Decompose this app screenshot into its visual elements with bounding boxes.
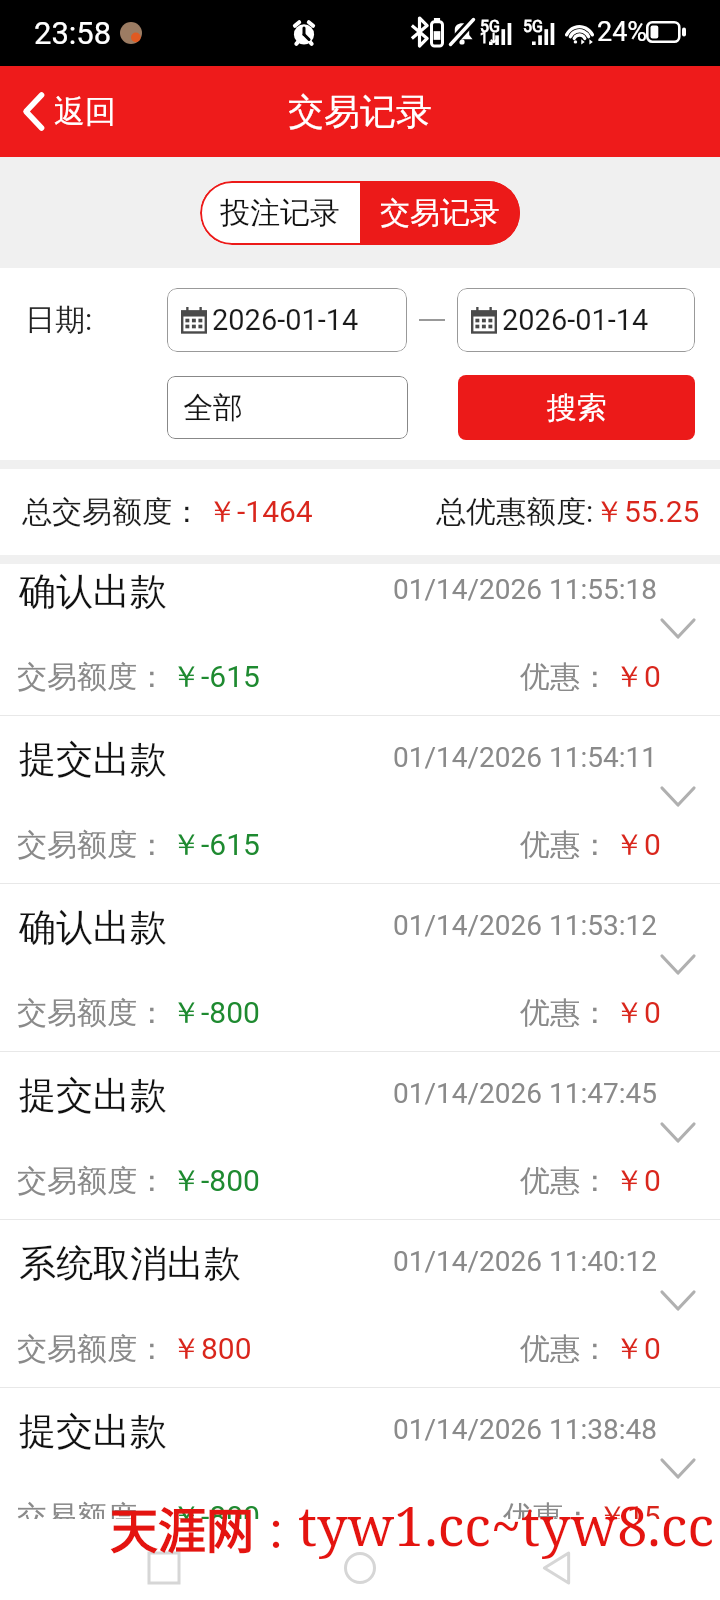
staticText: 优惠： <box>520 826 610 864</box>
staticText: 交易记录 <box>380 194 500 232</box>
staticText: ￥0 <box>614 994 661 1032</box>
staticText: 01/14/2026 11:40:12 <box>393 1245 657 1278</box>
staticText: 交易额度： <box>17 1330 167 1368</box>
staticText: 搜索 <box>547 389 607 427</box>
staticText: 日期: <box>25 301 93 339</box>
staticText: 交易额度： <box>17 1162 167 1200</box>
staticText: 5G <box>523 17 543 36</box>
staticText: 2026-01-14 <box>502 303 649 337</box>
staticText: 01/14/2026 11:47:45 <box>393 1077 657 1110</box>
staticText: 提交出款 <box>19 1408 167 1455</box>
staticText: 总优惠额度: <box>436 493 594 531</box>
staticText: 优惠： <box>520 994 610 1032</box>
staticText: ￥800 <box>171 1330 252 1368</box>
staticText: 01/14/2026 11:38:48 <box>393 1413 657 1446</box>
staticText: ￥-800 <box>171 994 260 1032</box>
staticText: ￥-1464 <box>207 493 313 531</box>
staticText: ￥-800 <box>171 1498 260 1519</box>
button[interactable]: 确认出款 <box>0 884 720 1051</box>
staticText: ￥-615 <box>171 658 260 696</box>
staticText: 确认出款 <box>19 568 167 615</box>
button[interactable]: 全部 <box>167 376 408 439</box>
button[interactable]: 投注记录 <box>200 181 360 245</box>
staticText: ￥55.25 <box>594 493 700 531</box>
staticText: 全部 <box>183 389 243 427</box>
staticText: 确认出款 <box>19 904 167 951</box>
staticText: 01/14/2026 11:55:18 <box>393 573 657 606</box>
button[interactable]: 2026-01-14 <box>167 288 407 352</box>
staticText: 提交出款 <box>19 736 167 783</box>
button[interactable]: Home <box>328 1536 392 1600</box>
button[interactable]: 返回 <box>0 80 132 143</box>
staticText: 天涯网 <box>110 1492 255 1562</box>
staticText: 返回 <box>54 92 116 131</box>
staticText: tyw1.cc~tyw8.cc <box>298 1488 714 1562</box>
staticText: ￥0 <box>614 658 661 696</box>
staticText: ￥0 <box>614 1330 661 1368</box>
staticText: 1↓ <box>480 30 500 46</box>
staticText: ： <box>255 1501 298 1562</box>
staticText: 交易额度： <box>17 658 167 696</box>
staticText: 优惠： <box>520 1330 610 1368</box>
button[interactable]: 提交出款 <box>0 1052 720 1219</box>
button[interactable]: 搜索 <box>458 375 695 440</box>
staticText: 投注记录 <box>220 194 340 232</box>
staticText: 交易记录 <box>288 89 432 134</box>
staticText: 优惠： <box>520 658 610 696</box>
staticText: 01/14/2026 11:54:11 <box>393 741 657 774</box>
staticText: ￥-615 <box>171 826 260 864</box>
staticText: 优惠： <box>520 1162 610 1200</box>
staticText: 交易额度： <box>17 826 167 864</box>
staticText: 优惠： <box>503 1498 593 1519</box>
staticText: 系统取消出款 <box>19 1240 241 1287</box>
staticText: 提交出款 <box>19 1072 167 1119</box>
staticText: 01/14/2026 11:53:12 <box>393 909 657 942</box>
staticText: ￥15 <box>597 1498 661 1519</box>
staticText: 24% <box>597 16 648 48</box>
staticText: 总交易额度： <box>22 493 202 531</box>
staticText: ￥0 <box>614 1162 661 1200</box>
button[interactable]: Back <box>524 1536 588 1600</box>
staticText: 2026-01-14 <box>212 303 359 337</box>
staticText: 5G <box>480 17 500 36</box>
button[interactable]: Recent apps <box>132 1536 196 1600</box>
button[interactable]: 确认出款 <box>0 564 720 715</box>
staticText: ￥-800 <box>171 1162 260 1200</box>
button[interactable]: 系统取消出款 <box>0 1220 720 1387</box>
staticText: 交易额度： <box>17 994 167 1032</box>
staticText: ￥0 <box>614 826 661 864</box>
staticText: 23:58 <box>34 15 112 51</box>
button[interactable]: 提交出款 <box>0 716 720 883</box>
button[interactable]: 2026-01-14 <box>457 288 695 352</box>
staticText: 交易额度： <box>17 1498 167 1519</box>
button[interactable]: 交易记录 <box>360 181 520 245</box>
button[interactable]: 提交出款 <box>0 1388 720 1519</box>
